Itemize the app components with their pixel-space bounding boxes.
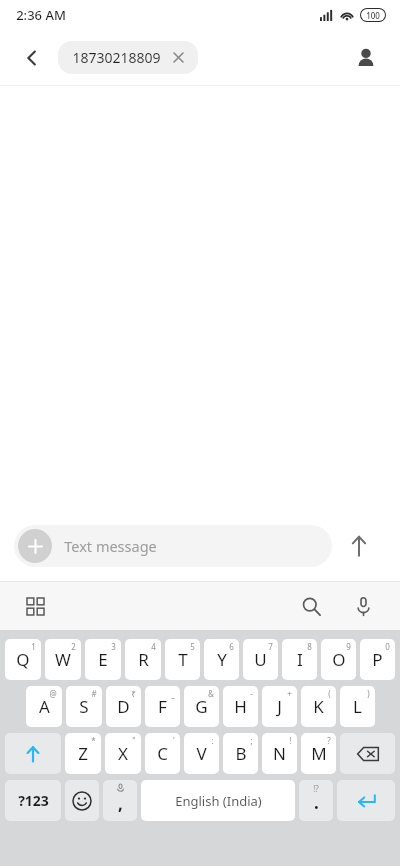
button[interactable]: ; bbox=[223, 733, 258, 774]
staticText: " bbox=[132, 735, 136, 746]
staticText: : bbox=[211, 735, 214, 746]
staticText: S bbox=[79, 695, 89, 718]
button[interactable]: 18730218809 bbox=[58, 41, 198, 74]
staticText: 8 bbox=[307, 641, 312, 652]
staticText: V bbox=[196, 742, 207, 765]
button[interactable]: Add attachment bbox=[14, 525, 332, 567]
button[interactable]: 8 bbox=[282, 639, 317, 680]
button[interactable]: " bbox=[105, 733, 141, 774]
staticText: Y bbox=[217, 648, 227, 671]
button[interactable]: 6 bbox=[204, 639, 239, 680]
staticText: N bbox=[273, 742, 286, 765]
staticText: C bbox=[157, 742, 168, 765]
button[interactable]: Shift bbox=[5, 733, 61, 774]
button[interactable]: 3 bbox=[85, 639, 121, 680]
staticText: T bbox=[178, 648, 188, 671]
button[interactable]: ! bbox=[262, 733, 297, 774]
staticText: 2 bbox=[71, 641, 76, 652]
staticText: X bbox=[118, 742, 128, 765]
staticText: ! bbox=[289, 735, 292, 746]
button[interactable]: Send bbox=[332, 519, 386, 573]
staticText: _ bbox=[171, 688, 175, 699]
staticText: 7 bbox=[268, 641, 273, 652]
button[interactable]: 7 bbox=[243, 639, 278, 680]
button[interactable]: - bbox=[223, 686, 258, 727]
staticText: 2:36 AM bbox=[16, 6, 66, 24]
staticText: I bbox=[297, 648, 303, 671]
staticText: Text message bbox=[64, 536, 157, 556]
staticText: # bbox=[91, 688, 97, 699]
button[interactable]: 4 bbox=[125, 639, 161, 680]
button[interactable]: ) bbox=[340, 686, 375, 727]
staticText: ' bbox=[173, 735, 175, 746]
staticText: U bbox=[254, 648, 267, 671]
button[interactable]: 0 bbox=[360, 639, 395, 680]
button[interactable]: * bbox=[65, 733, 101, 774]
staticText: E bbox=[98, 648, 108, 671]
staticText: 4 bbox=[151, 641, 156, 652]
button[interactable]: English (India) bbox=[141, 780, 295, 821]
staticText: Z bbox=[78, 742, 88, 765]
button[interactable]: Comma, voice input bbox=[103, 780, 137, 821]
staticText: , bbox=[118, 792, 123, 815]
button[interactable]: Search bbox=[292, 587, 330, 625]
staticText: ( bbox=[328, 688, 331, 699]
staticText: Q bbox=[16, 648, 30, 671]
staticText: @ bbox=[49, 688, 57, 699]
staticText: K bbox=[313, 695, 324, 718]
staticText: B bbox=[235, 742, 247, 765]
staticText: G bbox=[195, 695, 208, 718]
button[interactable]: ' bbox=[145, 733, 180, 774]
staticText: P bbox=[372, 648, 383, 671]
staticText: English (India) bbox=[175, 792, 262, 810]
staticText: D bbox=[117, 695, 130, 718]
staticText: F bbox=[158, 695, 167, 718]
button[interactable]: & bbox=[184, 686, 219, 727]
button[interactable]: ( bbox=[301, 686, 336, 727]
staticText: 0 bbox=[385, 641, 390, 652]
staticText: 5 bbox=[190, 641, 195, 652]
button[interactable]: Enter bbox=[337, 780, 395, 821]
staticText: ? bbox=[327, 735, 331, 746]
staticText: * bbox=[91, 735, 96, 746]
button[interactable]: 5 bbox=[165, 639, 200, 680]
button[interactable]: 1 bbox=[5, 639, 41, 680]
staticText: 18730218809 bbox=[72, 48, 161, 67]
button[interactable]: !? bbox=[299, 780, 333, 821]
button[interactable]: ₹ bbox=[106, 686, 141, 727]
button[interactable]: @ bbox=[26, 686, 62, 727]
staticText: O bbox=[332, 648, 346, 671]
staticText: ) bbox=[367, 688, 370, 699]
staticText: R bbox=[138, 648, 149, 671]
staticText: A bbox=[39, 695, 50, 718]
staticText: W bbox=[55, 648, 71, 671]
button[interactable]: Keyboard options bbox=[18, 589, 52, 623]
button[interactable]: : bbox=[184, 733, 219, 774]
staticText: ; bbox=[250, 735, 253, 746]
staticText: . bbox=[314, 791, 319, 814]
staticText: ?123 bbox=[18, 791, 49, 810]
staticText: M bbox=[311, 742, 327, 765]
button[interactable]: + bbox=[262, 686, 297, 727]
button[interactable]: Emoji bbox=[65, 780, 99, 821]
button[interactable]: Voice input bbox=[344, 587, 382, 625]
staticText: L bbox=[353, 695, 362, 718]
button[interactable]: _ bbox=[145, 686, 180, 727]
button[interactable]: # bbox=[66, 686, 102, 727]
button[interactable]: 2 bbox=[45, 639, 81, 680]
button[interactable]: Backspace bbox=[340, 733, 395, 774]
button[interactable]: ? bbox=[301, 733, 336, 774]
staticText: 100 bbox=[366, 10, 380, 21]
staticText: 6 bbox=[229, 641, 234, 652]
button[interactable]: Contact bbox=[346, 38, 386, 78]
staticText: + bbox=[287, 688, 292, 699]
button[interactable]: Add attachment bbox=[18, 529, 52, 563]
staticText: 3 bbox=[111, 641, 116, 652]
staticText: !? bbox=[313, 783, 319, 794]
staticText: 9 bbox=[346, 641, 351, 652]
staticText: - bbox=[250, 688, 253, 699]
button[interactable]: Back bbox=[14, 40, 50, 76]
button[interactable]: ?123 bbox=[5, 780, 61, 821]
staticText: H bbox=[234, 695, 247, 718]
button[interactable]: 9 bbox=[321, 639, 356, 680]
